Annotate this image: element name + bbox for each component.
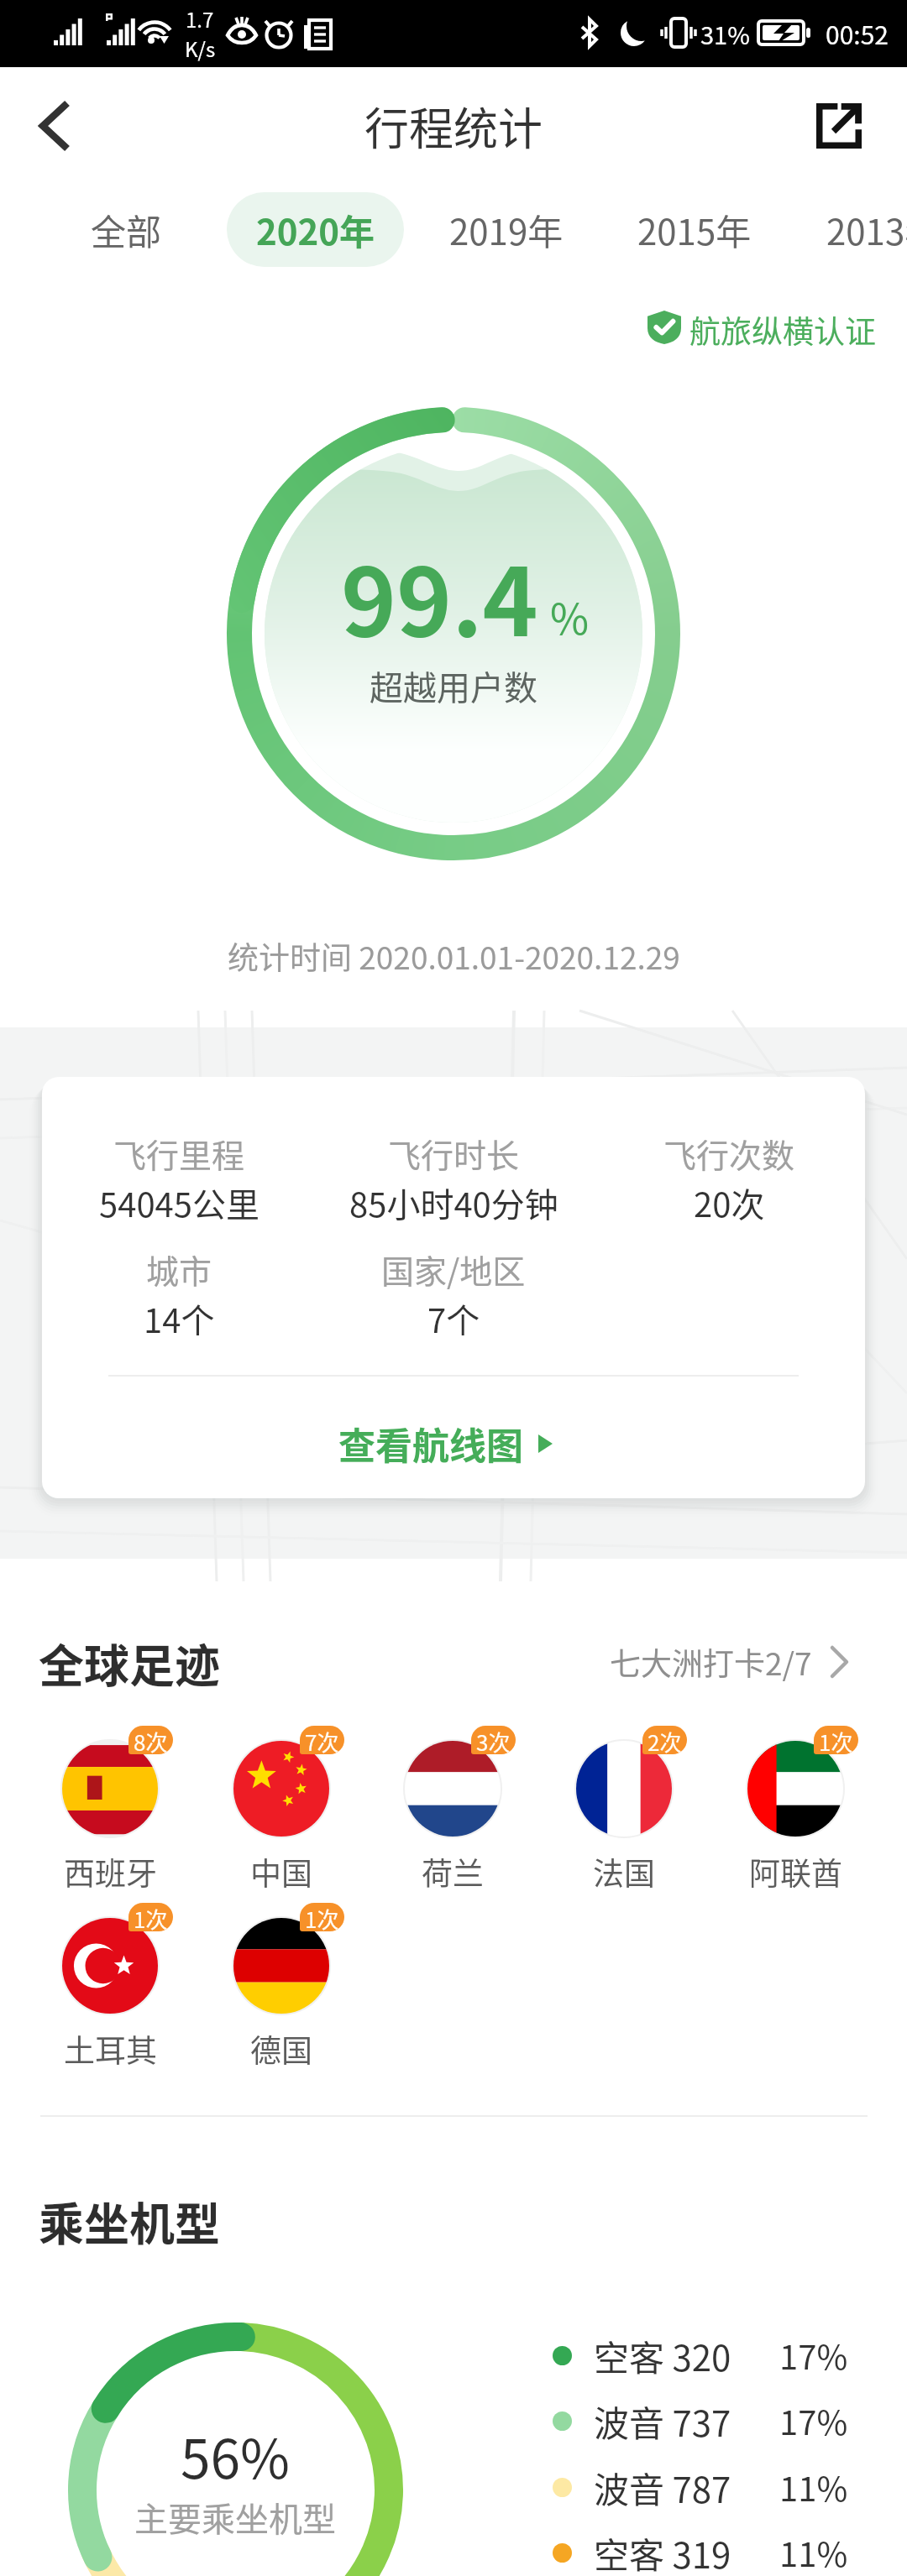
- button[interactable]: 8次: [26, 1734, 194, 1902]
- staticText: 1.7: [186, 4, 214, 34]
- button[interactable]: 波音 787: [537, 2454, 873, 2520]
- button[interactable]: 1次: [197, 1911, 365, 2079]
- staticText: 乘坐机型: [39, 2188, 220, 2254]
- staticText: %: [550, 586, 590, 646]
- staticText: 查看航线图: [338, 1417, 523, 1471]
- staticText: 飞行次数: [663, 1130, 795, 1177]
- staticText: 99.4: [341, 527, 538, 663]
- staticText: 飞行时长: [388, 1130, 520, 1177]
- staticText: 7次: [305, 1726, 339, 1754]
- button[interactable]: 全部: [91, 192, 162, 267]
- staticText: 17%: [779, 2331, 848, 2380]
- staticText: 超越用户数: [370, 661, 537, 710]
- staticText: 阿联酋: [749, 1849, 842, 1894]
- staticText: 中国: [250, 1849, 312, 1894]
- button[interactable]: 7次: [197, 1734, 365, 1902]
- staticText: 全部: [91, 204, 162, 255]
- staticText: 统计时间 2020.01.01-2020.12.29: [228, 933, 680, 979]
- staticText: 2次: [647, 1726, 682, 1754]
- staticText: 2015年: [637, 204, 752, 255]
- staticText: 2013年: [826, 204, 907, 255]
- staticText: 法国: [593, 1849, 655, 1894]
- button[interactable]: 空客 319: [537, 2520, 873, 2576]
- staticText: K/s: [185, 34, 216, 63]
- staticText: 波音 787: [594, 2462, 731, 2513]
- staticText: 85小时40分钟: [349, 1178, 558, 1227]
- staticText: 14个: [144, 1294, 215, 1343]
- staticText: 全球足迹: [39, 1630, 220, 1696]
- staticText: 11%: [779, 2528, 848, 2576]
- staticText: 56%: [181, 2417, 290, 2495]
- staticText: 飞行里程: [113, 1130, 245, 1177]
- button[interactable]: 1次: [26, 1911, 194, 2079]
- button[interactable]: 航旅纵横认证: [647, 307, 876, 347]
- button[interactable]: 2020年: [227, 192, 404, 267]
- button[interactable]: 2015年: [637, 192, 752, 267]
- staticText: 空客 319: [594, 2527, 731, 2576]
- staticText: 荷兰: [422, 1849, 484, 1894]
- staticText: 3次: [476, 1726, 511, 1754]
- staticText: 8次: [134, 1726, 168, 1754]
- button[interactable]: 2013年: [826, 192, 907, 267]
- button[interactable]: Back: [18, 91, 89, 161]
- staticText: 1次: [819, 1726, 853, 1754]
- staticText: 西班牙: [64, 1849, 157, 1894]
- button[interactable]: 2次: [540, 1734, 708, 1902]
- staticText: 2019年: [449, 204, 564, 255]
- staticText: 00:52: [826, 15, 889, 51]
- staticText: 主要乘坐机型: [134, 2493, 336, 2542]
- staticText: 7个: [427, 1294, 480, 1343]
- staticText: 17%: [779, 2396, 848, 2445]
- staticText: 空客 320: [594, 2330, 731, 2381]
- button[interactable]: 波音 737: [537, 2388, 873, 2453]
- staticText: 德国: [250, 2026, 312, 2072]
- staticText: 航旅纵横认证: [689, 307, 876, 347]
- button[interactable]: 七大洲打卡2/7: [610, 1638, 849, 1685]
- staticText: 31%: [700, 16, 750, 51]
- button[interactable]: 空客 320: [537, 2323, 873, 2388]
- button[interactable]: 3次: [369, 1734, 537, 1902]
- staticText: 54045公里: [99, 1178, 260, 1227]
- staticText: 20次: [694, 1178, 765, 1227]
- staticText: 2020年: [256, 204, 375, 255]
- staticText: 七大洲打卡2/7: [610, 1639, 812, 1685]
- button[interactable]: 1次: [711, 1734, 879, 1902]
- staticText: 城市: [146, 1246, 212, 1293]
- staticText: 波音 737: [594, 2396, 731, 2447]
- staticText: 1次: [305, 1903, 339, 1931]
- button[interactable]: 查看航线图: [42, 1397, 857, 1491]
- staticText: 行程统计: [364, 94, 543, 159]
- staticText: 土耳其: [64, 2026, 157, 2072]
- staticText: 11%: [779, 2463, 848, 2511]
- staticText: 1次: [134, 1903, 168, 1931]
- button[interactable]: Share: [816, 103, 862, 149]
- button[interactable]: 2019年: [449, 192, 564, 267]
- staticText: 国家/地区: [381, 1246, 526, 1293]
